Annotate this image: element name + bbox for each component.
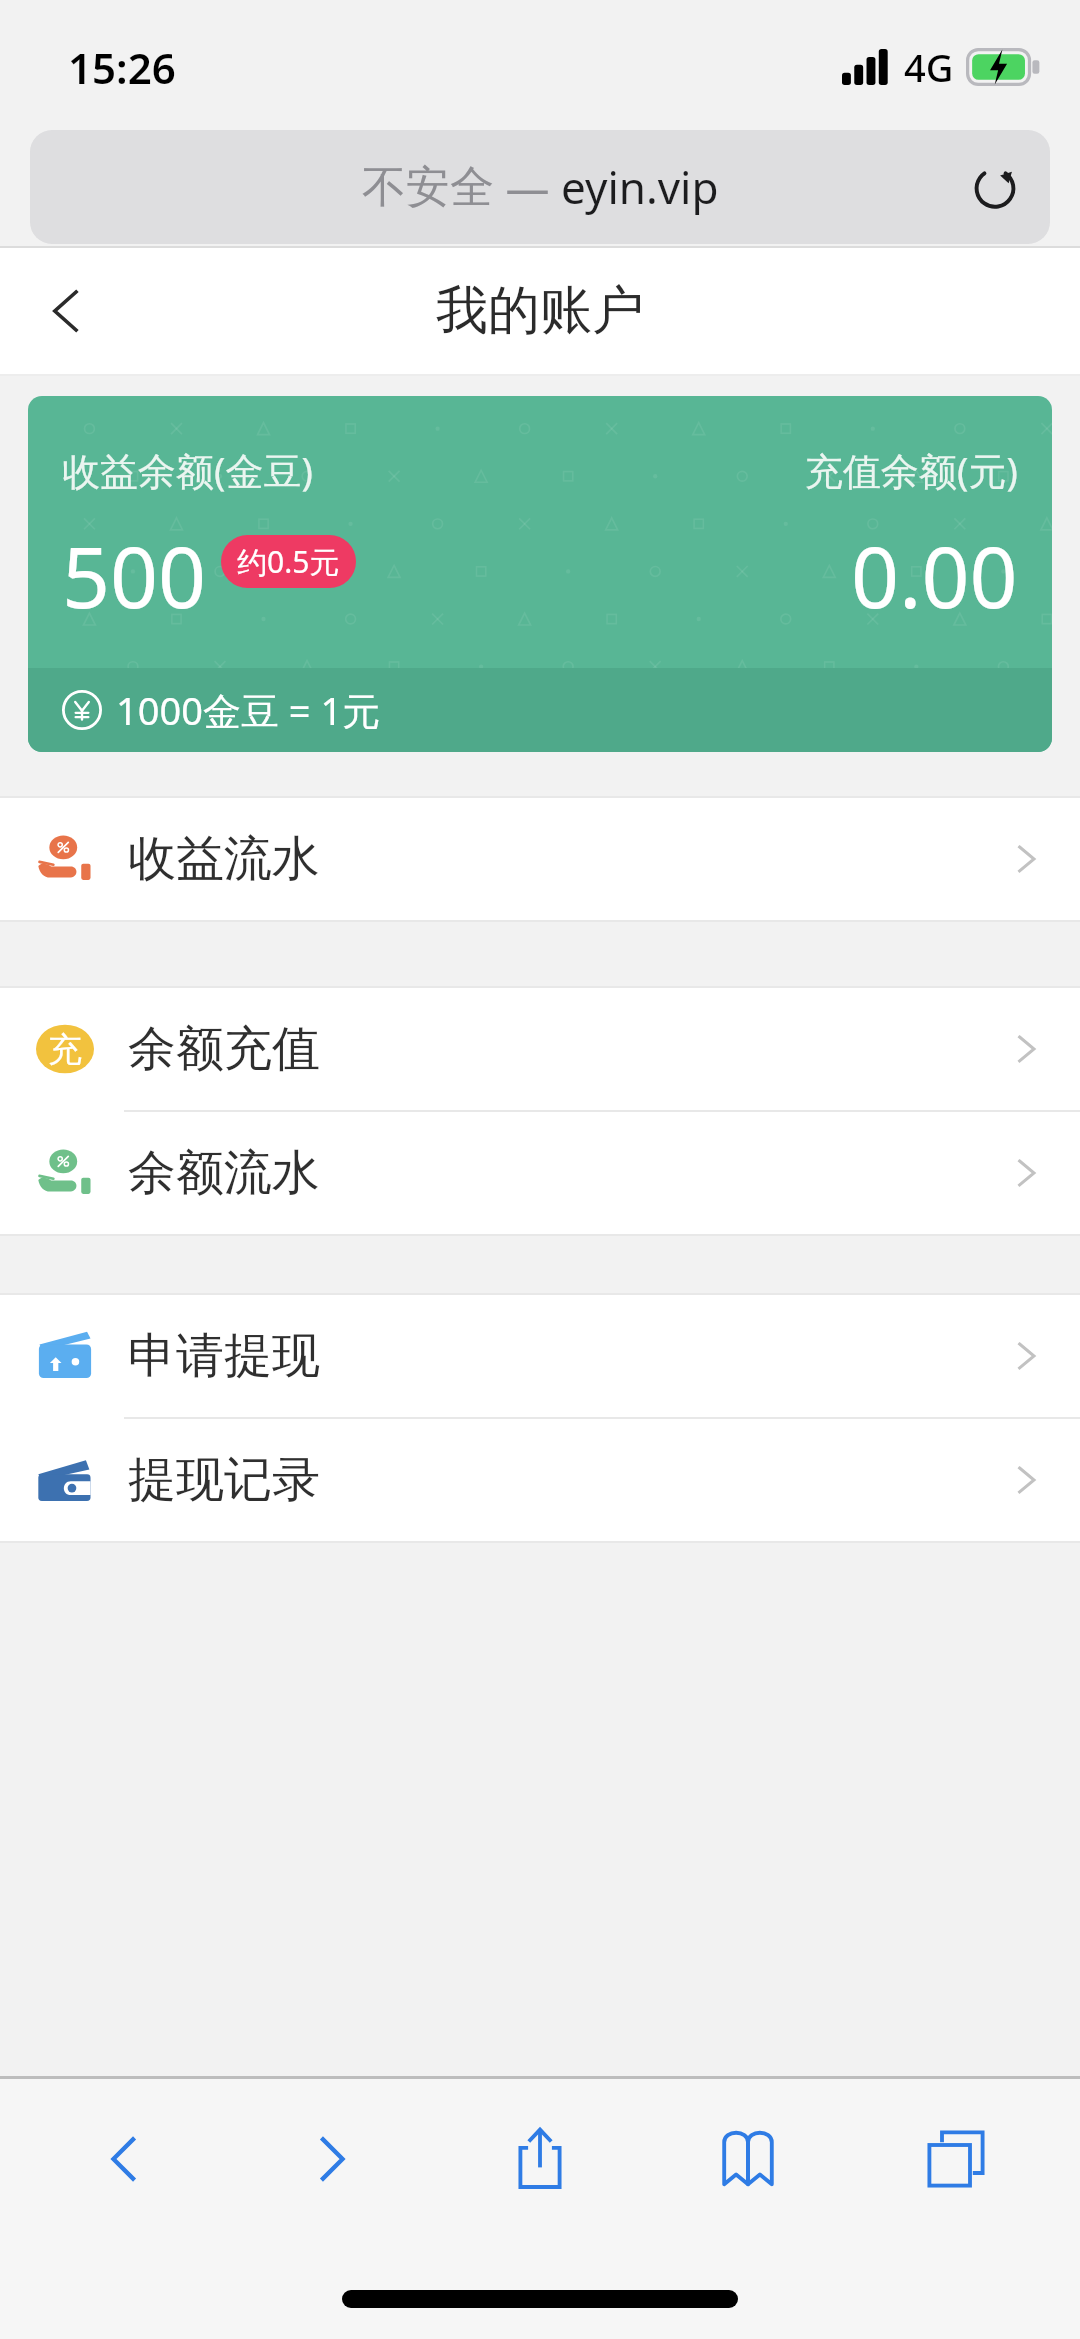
staticText: 15:26	[68, 39, 176, 96]
staticText: 0.00	[851, 518, 1018, 632]
button[interactable]: Back	[20, 2079, 228, 2239]
button[interactable]: 充	[0, 988, 1080, 1110]
staticText: eyin.vip	[561, 157, 719, 217]
button[interactable]: 提现记录	[0, 1419, 1080, 1541]
staticText: 4G	[904, 41, 954, 93]
button[interactable]: Back	[18, 263, 114, 359]
button[interactable]: 收益余额(金豆)	[28, 396, 1052, 752]
staticText: 申请提现	[128, 1326, 320, 1386]
button[interactable]: Share	[436, 2079, 644, 2239]
button[interactable]: Bookmarks	[644, 2079, 852, 2239]
button[interactable]: Forward	[228, 2079, 436, 2239]
staticText: 充值余额(元)	[805, 444, 1018, 496]
staticText: 1000金豆 = 1元	[116, 684, 381, 736]
button[interactable]: 不安全	[30, 130, 1050, 244]
staticText: 我的账户	[436, 278, 644, 344]
staticText: 500	[62, 518, 207, 632]
staticText: 收益余额(金豆)	[62, 444, 313, 496]
button[interactable]: Tabs	[852, 2079, 1060, 2239]
staticText: 约0.5元	[237, 541, 340, 582]
staticText: 收益流水	[128, 829, 320, 889]
button[interactable]: 余额流水	[0, 1112, 1080, 1234]
staticText: 余额流水	[128, 1143, 320, 1203]
staticText: 充	[48, 1028, 82, 1071]
button[interactable]: 收益流水	[0, 798, 1080, 920]
button[interactable]: 申请提现	[0, 1295, 1080, 1417]
staticText: 提现记录	[128, 1450, 320, 1510]
staticText: 不安全	[362, 160, 494, 215]
button[interactable]: Reload	[958, 150, 1032, 224]
staticText: —	[494, 157, 561, 217]
staticText: 余额充值	[128, 1019, 320, 1079]
